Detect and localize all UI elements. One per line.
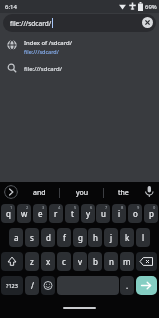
staticText: 8 <box>121 205 124 210</box>
button[interactable]: i <box>112 204 126 223</box>
staticText: file:///sdcard/ <box>10 19 52 28</box>
staticText: g <box>78 232 83 243</box>
button[interactable]: h <box>88 228 102 247</box>
staticText: a <box>14 232 19 243</box>
staticText: 9 <box>137 205 140 210</box>
staticText: t <box>71 208 74 219</box>
staticText: j <box>110 232 113 243</box>
button[interactable]: c <box>57 252 71 271</box>
staticText: 69% <box>145 3 157 11</box>
button[interactable]: z <box>25 252 39 271</box>
staticText: s <box>30 232 34 243</box>
button[interactable]: k <box>120 228 134 247</box>
button[interactable]: you <box>61 184 103 202</box>
staticText: f <box>63 232 66 243</box>
button[interactable]: file:///sdcard/ <box>0 60 159 81</box>
staticText: h <box>93 232 98 243</box>
button[interactable]: o <box>128 204 142 223</box>
staticText: 6:14 <box>5 3 17 11</box>
button[interactable]: m <box>120 252 134 271</box>
staticText: l <box>142 232 145 243</box>
staticText: and <box>33 188 46 198</box>
button[interactable]: y <box>81 204 95 223</box>
staticText: ?123 <box>6 282 18 289</box>
staticText: 7 <box>105 205 108 210</box>
staticText: e <box>38 208 43 219</box>
staticText: b <box>93 256 98 267</box>
button[interactable]: b <box>88 252 102 271</box>
button[interactable]: n <box>104 252 118 271</box>
button[interactable] <box>1 252 23 271</box>
staticText: o <box>133 208 138 219</box>
staticText: x <box>46 256 51 267</box>
button[interactable]: . <box>120 276 134 295</box>
staticText: file:///sdcard/ <box>24 65 62 73</box>
staticText: . <box>126 280 129 291</box>
button[interactable]: t <box>65 204 79 223</box>
staticText: z <box>30 256 34 267</box>
staticText: Index of /sdcard/ <box>24 39 73 47</box>
button[interactable]: / <box>25 276 39 295</box>
button[interactable] <box>143 185 156 200</box>
staticText: y <box>86 208 91 219</box>
button[interactable]: q <box>1 204 15 223</box>
button[interactable]: f <box>57 228 71 247</box>
staticText: w <box>21 208 28 219</box>
button[interactable] <box>142 17 153 28</box>
staticText: c <box>62 256 66 267</box>
button[interactable]: e <box>33 204 47 223</box>
staticText: 6 <box>90 205 93 210</box>
button[interactable]: p <box>144 204 158 223</box>
staticText: d <box>46 232 51 243</box>
staticText: you <box>76 188 89 198</box>
button[interactable] <box>57 276 119 295</box>
staticText: 5 <box>74 205 77 210</box>
staticText: q <box>6 208 11 219</box>
button[interactable]: s <box>25 228 39 247</box>
staticText: 2 <box>26 205 29 210</box>
button[interactable]: g <box>73 228 87 247</box>
staticText: 4 <box>58 205 61 210</box>
button[interactable]: a <box>9 228 23 247</box>
button[interactable]: ?123 <box>1 276 23 295</box>
button[interactable]: d <box>41 228 55 247</box>
button[interactable]: x <box>41 252 55 271</box>
staticText: n <box>109 256 114 267</box>
button[interactable]: r <box>49 204 63 223</box>
staticText: r <box>54 208 58 219</box>
button[interactable]: Index of /sdcard/ <box>0 37 159 60</box>
staticText: 3 <box>42 205 45 210</box>
staticText: / <box>31 280 34 291</box>
staticText: p <box>149 208 154 219</box>
button[interactable]: file:///sdcard/ <box>3 14 156 32</box>
staticText: 0 <box>153 205 156 210</box>
button[interactable] <box>4 185 18 199</box>
button[interactable]: u <box>96 204 110 223</box>
button[interactable]: l <box>136 228 150 247</box>
button[interactable] <box>41 276 55 295</box>
button[interactable]: the <box>104 184 142 202</box>
staticText: file:///sdcard/ <box>24 48 59 55</box>
staticText: m <box>123 256 131 267</box>
staticText: 1 <box>10 205 13 210</box>
staticText: i <box>118 208 121 219</box>
button[interactable] <box>136 276 157 295</box>
staticText: the <box>118 188 129 198</box>
button[interactable]: v <box>73 252 87 271</box>
button[interactable]: j <box>104 228 118 247</box>
staticText: v <box>78 256 83 267</box>
button[interactable]: and <box>20 184 59 202</box>
button[interactable]: w <box>17 204 31 223</box>
button[interactable] <box>136 252 157 271</box>
staticText: k <box>125 232 130 243</box>
staticText: u <box>101 208 106 219</box>
